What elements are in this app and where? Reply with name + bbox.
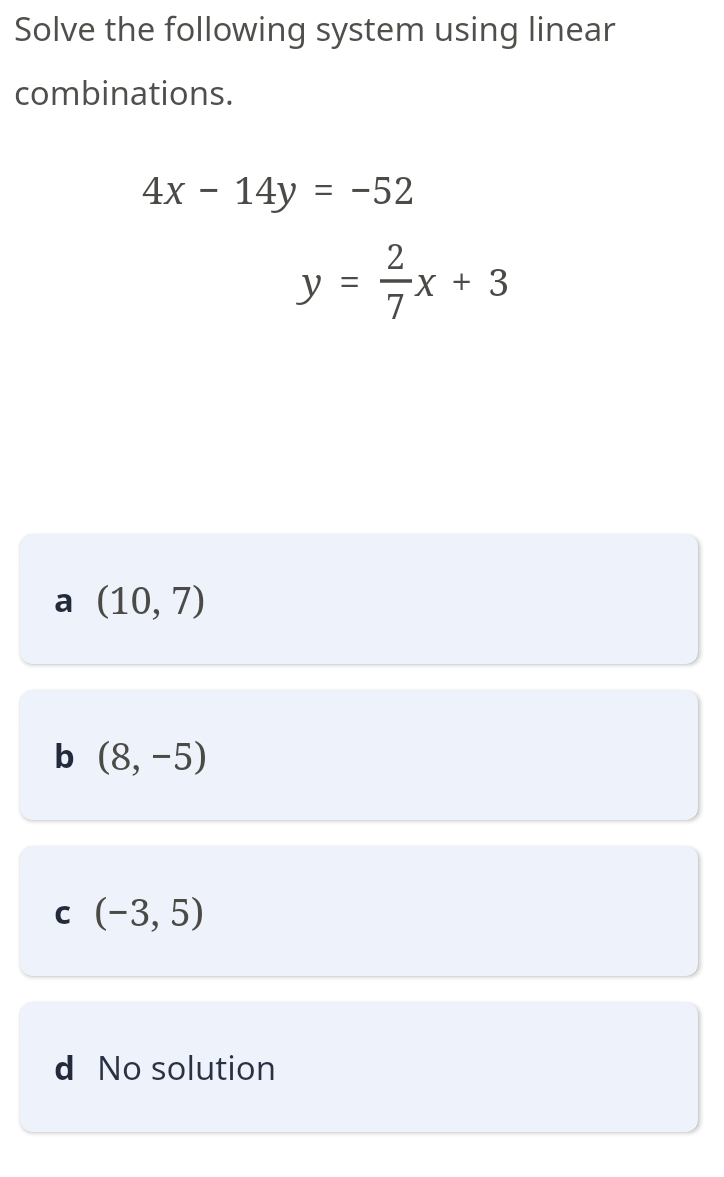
staticText: =: [313, 163, 335, 215]
staticText: −52: [350, 163, 415, 215]
staticText: x: [415, 255, 436, 307]
staticText: x: [164, 163, 185, 215]
staticText: −: [198, 163, 221, 215]
staticText: d: [54, 1045, 75, 1090]
staticText: 3: [488, 255, 510, 307]
staticText: 2: [386, 233, 406, 279]
staticText: (8, −5): [97, 729, 208, 781]
staticText: c: [54, 889, 72, 934]
staticText: 7: [386, 283, 406, 329]
staticText: +: [451, 255, 473, 307]
staticText: 14: [234, 163, 277, 215]
button[interactable]: b: [20, 690, 698, 820]
staticText: y: [277, 163, 298, 215]
staticText: y: [302, 255, 323, 307]
button[interactable]: c: [20, 846, 698, 976]
staticText: 4: [142, 163, 164, 215]
staticText: b: [54, 733, 75, 778]
staticText: Solve the following system using linear …: [14, 6, 654, 115]
staticText: a: [54, 577, 74, 622]
button[interactable]: d: [20, 1002, 698, 1132]
staticText: No solution: [97, 1045, 277, 1090]
staticText: (10, 7): [96, 573, 206, 625]
staticText: =: [339, 255, 361, 307]
staticText: (−3, 5): [94, 885, 205, 937]
button[interactable]: a: [20, 534, 698, 664]
